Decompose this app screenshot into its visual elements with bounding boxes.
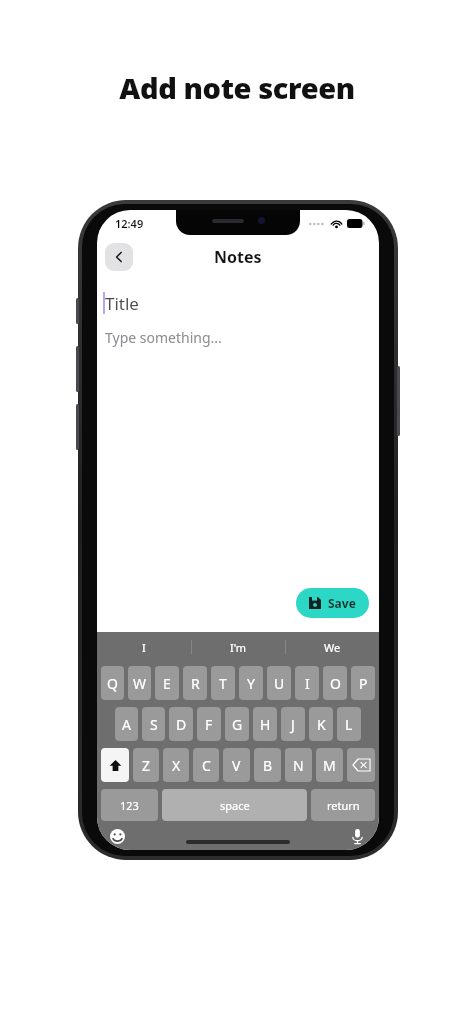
button[interactable]: M	[316, 748, 343, 782]
button[interactable]: I	[97, 632, 191, 662]
staticText: P	[359, 674, 368, 693]
button[interactable]: Back	[105, 243, 133, 271]
staticText: Add note screen	[0, 68, 474, 107]
staticText: 12:49	[115, 216, 144, 231]
staticText: K	[317, 715, 326, 734]
staticText: R	[191, 674, 200, 693]
button[interactable]: K	[309, 707, 333, 741]
staticText: J	[291, 715, 295, 734]
button[interactable]: W	[128, 666, 151, 700]
button[interactable]: C	[193, 748, 219, 782]
button[interactable]: E	[155, 666, 179, 700]
button[interactable]: I'm	[192, 632, 285, 662]
button[interactable]: Shift	[101, 748, 129, 782]
button[interactable]: L	[337, 707, 361, 741]
button[interactable]: F	[197, 707, 221, 741]
staticText: Z	[142, 756, 151, 775]
button[interactable]: N	[285, 748, 312, 782]
button[interactable]: X	[163, 748, 189, 782]
staticText: S	[150, 715, 158, 734]
button[interactable]: I	[295, 666, 319, 700]
staticText: U	[274, 674, 285, 693]
staticText: I	[142, 640, 146, 655]
staticText: V	[232, 756, 241, 775]
staticText: Title	[105, 292, 139, 315]
button[interactable]: Dictation	[347, 826, 367, 846]
button[interactable]: T	[211, 666, 235, 700]
staticText: F	[205, 715, 213, 734]
staticText: T	[219, 674, 227, 693]
staticText: E	[163, 674, 171, 693]
staticText: M	[323, 756, 336, 775]
button[interactable]: Save	[296, 588, 369, 618]
staticText: D	[176, 715, 187, 734]
staticText: 123	[120, 798, 139, 813]
staticText: L	[345, 715, 353, 734]
button[interactable]: O	[323, 666, 347, 700]
staticText: B	[263, 756, 273, 775]
staticText: We	[324, 640, 341, 655]
staticText: Notes	[214, 246, 262, 268]
staticText: C	[202, 756, 211, 775]
staticText: Q	[107, 674, 118, 693]
button[interactable]: Title	[103, 286, 373, 320]
button[interactable]: G	[225, 707, 249, 741]
staticText: I'm	[230, 640, 247, 655]
button[interactable]: Emoji	[107, 826, 127, 846]
button[interactable]: V	[223, 748, 250, 782]
staticText: Y	[247, 674, 255, 693]
button[interactable]: Z	[133, 748, 159, 782]
button[interactable]: R	[183, 666, 207, 700]
staticText: H	[260, 715, 271, 734]
staticText: A	[122, 715, 131, 734]
staticText: return	[327, 798, 360, 813]
staticText: O	[330, 674, 341, 693]
staticText: X	[172, 756, 181, 775]
button[interactable]: Type something...	[105, 328, 379, 347]
button[interactable]: return	[311, 789, 375, 821]
staticText: N	[293, 756, 304, 775]
button[interactable]: J	[281, 707, 305, 741]
button[interactable]: B	[254, 748, 281, 782]
button[interactable]: S	[142, 707, 165, 741]
button[interactable]: Y	[239, 666, 263, 700]
staticText: Type something...	[105, 328, 222, 347]
button[interactable]: space	[162, 789, 307, 821]
button[interactable]: A	[115, 707, 138, 741]
staticText: I	[305, 674, 310, 693]
button[interactable]: We	[286, 632, 379, 662]
button[interactable]: P	[351, 666, 375, 700]
staticText: W	[133, 674, 147, 693]
button[interactable]: U	[267, 666, 291, 700]
button[interactable]: Q	[101, 666, 124, 700]
button[interactable]: H	[253, 707, 277, 741]
staticText: G	[232, 715, 243, 734]
staticText: space	[220, 798, 250, 813]
button[interactable]: Delete	[347, 748, 375, 782]
button[interactable]: D	[169, 707, 193, 741]
button[interactable]: 123	[101, 789, 158, 821]
staticText: Save	[328, 595, 356, 611]
